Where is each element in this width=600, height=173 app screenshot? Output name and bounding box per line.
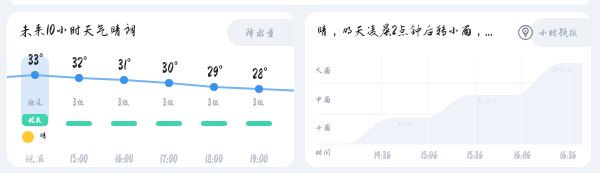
staticText: 3级	[118, 98, 130, 107]
button[interactable]: 小时预报	[518, 18, 578, 47]
staticText: 29°	[207, 65, 222, 80]
staticText: 3级	[73, 98, 85, 107]
staticText: 15:00	[70, 153, 88, 164]
staticText: 15:06	[421, 150, 438, 160]
staticText: 优良	[28, 116, 43, 124]
staticText: 28°	[252, 67, 267, 82]
staticText: 大雨	[315, 66, 332, 75]
staticText: 时间	[315, 148, 332, 157]
staticText: 微风	[27, 98, 44, 107]
staticText: 3级	[208, 98, 220, 107]
staticText: 19:00	[250, 153, 268, 164]
staticText: 降水量	[245, 27, 275, 38]
staticText: 18:00	[205, 153, 223, 164]
staticText: 小雨	[315, 123, 332, 132]
staticText: 中雨	[315, 95, 332, 104]
staticText: 15:36	[467, 150, 483, 160]
button[interactable]: 降水量	[227, 19, 294, 46]
staticText: 31°	[118, 58, 130, 73]
staticText: 27分后	[552, 65, 573, 73]
staticText: 14:36	[374, 150, 391, 160]
staticText: 16:06	[514, 150, 531, 160]
staticText: 小时预报	[538, 27, 578, 38]
staticText: 33°	[28, 53, 43, 68]
staticText: 未来10小时天气晴朗	[19, 23, 137, 38]
staticText: 晴，明天凌晨2点钟后转小雨，…	[316, 24, 493, 38]
other: 小时预报	[518, 25, 533, 40]
staticText: 3级	[253, 98, 265, 107]
staticText: 30°	[162, 61, 177, 76]
staticText: 3级	[163, 98, 175, 107]
staticText: 17:00	[160, 153, 178, 164]
staticText: 16:00	[115, 153, 134, 164]
staticText: 10-25分	[477, 97, 498, 105]
staticText: 16:36	[560, 150, 577, 160]
staticText: 现在	[25, 153, 45, 164]
staticText: 晴	[39, 131, 48, 140]
staticText: 0-1分	[398, 120, 413, 128]
staticText: 32°	[72, 56, 87, 71]
